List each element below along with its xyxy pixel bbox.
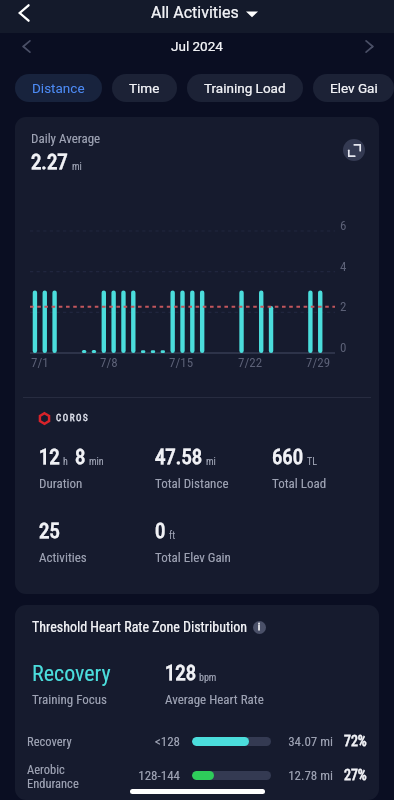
staticText: Duration — [39, 476, 83, 491]
staticText: 7/22 — [238, 355, 263, 370]
staticText: 27% — [344, 767, 367, 783]
staticText: Total Elev Gain — [155, 550, 231, 565]
staticText: 12.78 mi — [284, 768, 333, 783]
staticText: 34.07 mi — [284, 734, 333, 749]
staticText: 72% — [344, 733, 367, 749]
staticText: 0 — [155, 519, 166, 544]
staticText: i — [258, 622, 261, 633]
button[interactable]: Distance — [15, 74, 102, 102]
staticText: 7/8 — [100, 355, 118, 370]
staticText: 47.58 — [155, 445, 203, 470]
staticText: Threshold Heart Rate Zone Distribution — [32, 619, 248, 635]
staticText: Jul 2024 — [171, 38, 223, 54]
staticText: 7/29 — [306, 355, 331, 370]
button[interactable]: Training Load — [187, 74, 303, 102]
staticText: 7/15 — [169, 355, 194, 370]
staticText: 2.27 — [31, 150, 68, 175]
staticText: 660 — [272, 445, 304, 470]
button[interactable]: Time — [112, 74, 177, 102]
button[interactable]: Previous month — [16, 36, 36, 56]
button[interactable]: Elev Gain — [313, 74, 394, 102]
staticText: h — [63, 456, 68, 468]
staticText: mi — [72, 161, 82, 173]
staticText: 0 — [340, 340, 347, 355]
staticText: bpm — [199, 672, 217, 684]
staticText: ft — [169, 530, 176, 542]
staticText: 8 — [75, 445, 86, 470]
staticText: COROS — [56, 413, 90, 424]
staticText: Activities — [39, 550, 87, 565]
button[interactable]: Back — [0, 0, 48, 25]
staticText: 6 — [340, 218, 347, 233]
staticText: 128-144 — [132, 768, 180, 783]
staticText: 2 — [340, 299, 347, 314]
staticText: Aerobic Endurance — [27, 762, 132, 788]
staticText: TL — [307, 456, 317, 468]
button[interactable]: Expand chart — [343, 139, 365, 161]
staticText: mi — [206, 456, 216, 468]
button[interactable]: All Activities — [151, 3, 258, 22]
staticText: All Activities — [151, 3, 239, 22]
staticText: Time — [129, 80, 160, 96]
staticText: Distance — [32, 80, 85, 96]
staticText: 4 — [340, 259, 347, 274]
staticText: Training Load — [204, 80, 286, 96]
staticText: Elev Gain — [330, 80, 377, 96]
staticText: <128 — [132, 734, 180, 749]
button[interactable]: Info — [253, 621, 266, 634]
staticText: 128 — [165, 661, 197, 686]
staticText: Average Heart Rate — [165, 692, 264, 707]
staticText: 12 — [39, 445, 60, 470]
staticText: 7/1 — [31, 355, 49, 370]
staticText: Training Focus — [32, 692, 108, 707]
staticText: min — [89, 456, 104, 468]
button[interactable]: Next month — [359, 36, 379, 56]
staticText: Total Distance — [155, 476, 229, 491]
staticText: Daily Average — [31, 131, 101, 146]
staticText: Total Load — [272, 476, 327, 491]
staticText: Recovery — [27, 734, 132, 749]
staticText: Recovery — [32, 661, 111, 687]
staticText: 25 — [39, 519, 60, 544]
